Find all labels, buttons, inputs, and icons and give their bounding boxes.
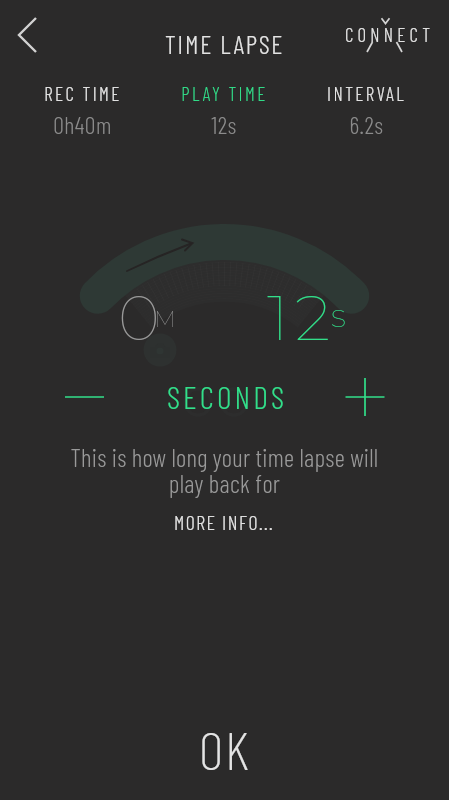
staticText: REC TIME [44, 82, 122, 105]
button[interactable]: Decrease [54, 377, 114, 417]
staticText: This is how long your time lapse will pl… [60, 442, 389, 498]
staticText: 12 [267, 278, 337, 356]
button[interactable]: OK [199, 716, 251, 781]
staticText: s [331, 296, 346, 335]
button[interactable]: Connect [330, 6, 449, 58]
staticText: CONNECT [345, 23, 435, 46]
staticText: 12s [211, 110, 237, 139]
staticText: 0 [118, 278, 160, 356]
button[interactable]: Increase [335, 367, 395, 427]
staticText: INTERVAL [327, 82, 406, 105]
staticText: PLAY TIME [181, 82, 268, 105]
staticText: 6.2s [349, 110, 384, 139]
staticText: M [154, 305, 176, 333]
button[interactable]: MORE INFO... [174, 510, 275, 534]
button[interactable]: PLAY TIME [153, 82, 295, 134]
button[interactable]: Back [3, 10, 53, 60]
staticText: 0h40m [53, 110, 112, 139]
staticText: TIME LAPSE [165, 28, 285, 59]
button[interactable]: REC TIME [12, 82, 153, 134]
button[interactable]: SECONDS [167, 377, 288, 415]
button[interactable]: INTERVAL [295, 82, 437, 134]
